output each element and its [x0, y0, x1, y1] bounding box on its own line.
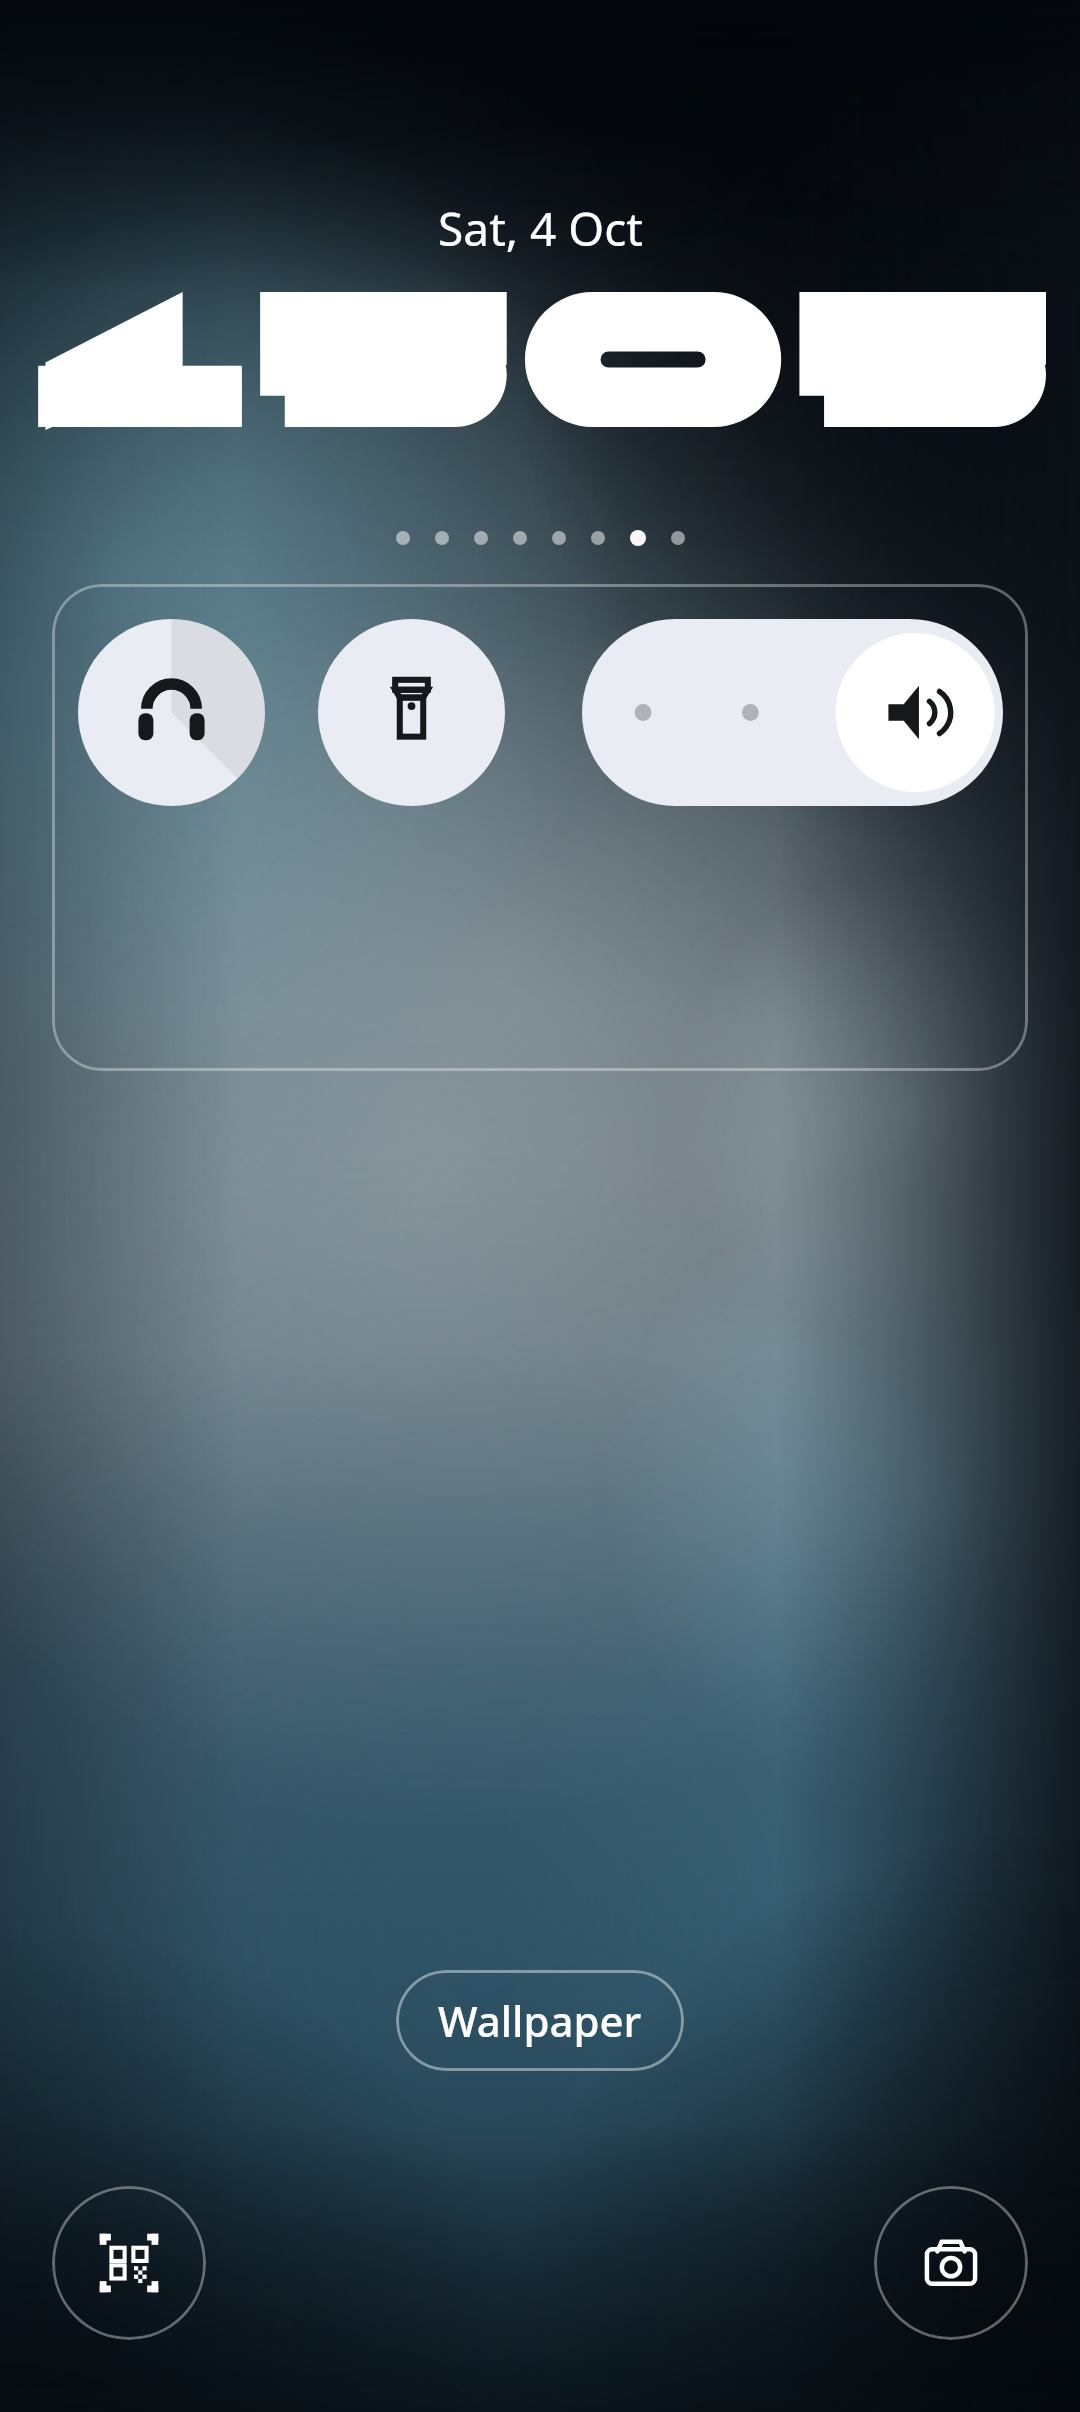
other: Time 15:05 — [34, 292, 1046, 427]
staticText: Wallpaper — [438, 1992, 642, 2049]
staticText: Sat, 4 Oct — [438, 197, 643, 260]
button[interactable]: Flashlight — [318, 619, 505, 806]
button[interactable]: Wallpaper — [396, 1970, 684, 2071]
button[interactable]: Volume — [582, 619, 1003, 806]
button[interactable]: Headphones — [78, 619, 265, 806]
button[interactable]: Scan QR code — [52, 2186, 206, 2340]
button[interactable]: Camera — [874, 2186, 1028, 2340]
